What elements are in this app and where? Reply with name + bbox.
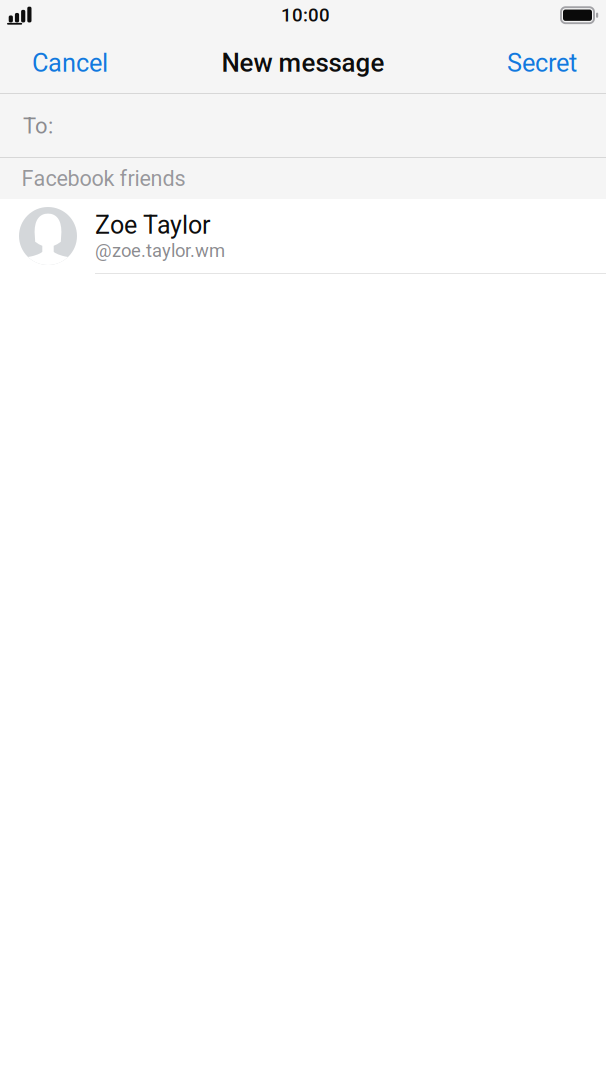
staticText: New message — [221, 48, 384, 78]
staticText: Facebook friends — [21, 166, 185, 191]
staticText: @zoe.taylor.wm — [95, 240, 225, 261]
staticText: 10:00 — [281, 4, 330, 26]
button[interactable]: Secret — [491, 32, 606, 94]
staticText: To: — [23, 113, 53, 139]
staticText: Cancel — [32, 48, 108, 78]
staticText: Secret — [507, 48, 577, 78]
button[interactable]: Cancel — [0, 32, 124, 94]
staticText: Zoe Taylor — [95, 210, 210, 240]
button[interactable]: Zoe Taylor — [0, 199, 606, 274]
